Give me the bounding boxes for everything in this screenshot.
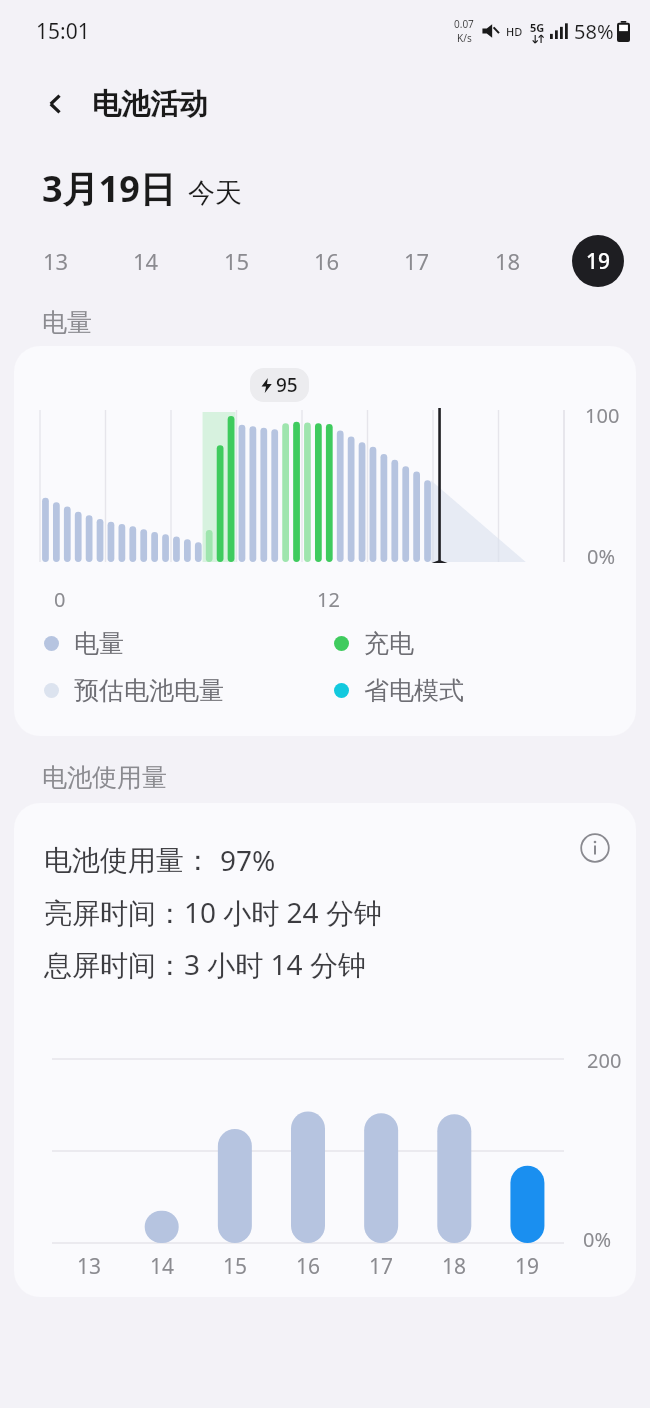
button[interactable]: 13 xyxy=(30,235,82,287)
staticText: 100 xyxy=(585,402,620,429)
staticText: 3月19日 xyxy=(42,164,176,213)
staticText: 17 xyxy=(404,246,430,276)
staticText: 18 xyxy=(495,246,521,276)
button[interactable]: 17 xyxy=(391,235,443,287)
staticText: 14 xyxy=(150,1252,175,1281)
staticText: 5G xyxy=(530,20,545,35)
staticText: 14 xyxy=(133,246,159,276)
staticText: 17 xyxy=(369,1252,394,1281)
staticText: 电量 xyxy=(74,628,124,659)
staticText: 200 xyxy=(587,1047,622,1074)
staticText: 15 xyxy=(224,246,250,276)
staticText: 电池使用量 xyxy=(42,762,167,793)
staticText: 今天 xyxy=(188,176,242,210)
button[interactable]: 19 xyxy=(572,235,624,287)
staticText: 95 xyxy=(276,372,298,398)
staticText: 息屏时间：3 小时 14 分钟 xyxy=(44,945,366,983)
staticText: K/s xyxy=(457,31,472,45)
button[interactable]: Information xyxy=(572,825,618,871)
staticText: 电量 xyxy=(42,307,92,338)
staticText: 15:01 xyxy=(36,17,90,46)
staticText: 亮屏时间：10 小时 24 分钟 xyxy=(44,893,382,931)
staticText: 12 xyxy=(317,586,340,613)
staticText: 预估电池电量 xyxy=(74,675,224,706)
button[interactable]: 14 xyxy=(120,235,172,287)
staticText: 13 xyxy=(77,1252,102,1281)
staticText: 18 xyxy=(442,1252,467,1281)
staticText: 97% xyxy=(220,841,276,879)
staticText: 0 xyxy=(54,586,66,613)
button[interactable]: 100 xyxy=(14,346,636,736)
staticText: 19 xyxy=(515,1252,540,1281)
button[interactable]: 18 xyxy=(482,235,534,287)
button[interactable]: 15 xyxy=(211,235,263,287)
staticText: 充电 xyxy=(364,628,414,659)
staticText: 省电模式 xyxy=(364,675,464,706)
staticText: HD xyxy=(506,24,523,39)
staticText: 15 xyxy=(223,1252,248,1281)
staticText: 0% xyxy=(583,1226,612,1253)
button[interactable]: 16 xyxy=(301,235,353,287)
staticText: 0.07 xyxy=(454,17,474,31)
staticText: 电池活动 xyxy=(92,86,208,123)
button[interactable]: Back xyxy=(34,82,78,126)
staticText: 13 xyxy=(43,246,69,276)
staticText: 16 xyxy=(296,1252,321,1281)
staticText: 16 xyxy=(314,246,340,276)
staticText: 19 xyxy=(586,247,611,276)
button[interactable]: 电池使用量： xyxy=(14,803,636,1297)
staticText: 0% xyxy=(587,543,616,570)
staticText: 58% xyxy=(574,18,614,45)
staticText: 电池使用量： xyxy=(44,843,212,878)
